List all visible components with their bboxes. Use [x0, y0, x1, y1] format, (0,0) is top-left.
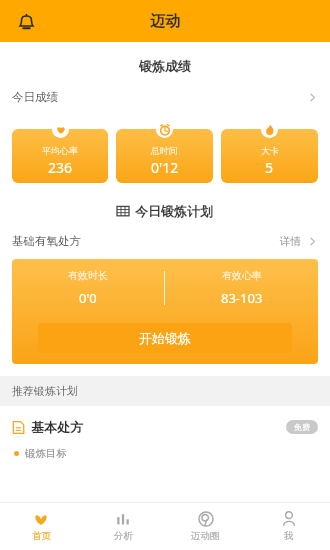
button[interactable]: 基本处方: [0, 416, 330, 438]
button[interactable]: 今日成绩: [0, 87, 330, 107]
staticText: 免费: [294, 422, 310, 432]
staticText: 分析: [114, 530, 133, 542]
staticText: 我: [284, 530, 294, 542]
button[interactable]: 开始锻炼: [38, 323, 292, 353]
staticText: 有效时长: [68, 269, 108, 282]
staticText: 迈动圈: [191, 530, 220, 542]
staticText: 大卡: [261, 145, 279, 156]
staticText: 5: [265, 158, 274, 177]
button[interactable]: Notifications: [10, 5, 42, 37]
staticText: 总时间: [151, 145, 178, 156]
staticText: 今日成绩: [12, 90, 58, 104]
staticText: 锻炼目标: [25, 447, 67, 460]
staticText: 锻炼成绩: [0, 58, 330, 74]
staticText: 首页: [32, 530, 51, 542]
staticText: 236: [48, 158, 73, 177]
button[interactable]: 首页: [0, 502, 82, 550]
staticText: 0'0: [79, 289, 97, 307]
button[interactable]: 我: [247, 502, 330, 550]
staticText: 推荐锻炼计划: [12, 384, 78, 398]
staticText: 开始锻炼: [139, 330, 191, 346]
button[interactable]: 基础有氧处方: [0, 231, 330, 251]
button[interactable]: 总时间: [116, 121, 213, 183]
staticText: 83-103: [221, 289, 263, 307]
staticText: 有效心率: [222, 269, 262, 282]
button[interactable]: 分析: [82, 502, 164, 550]
button[interactable]: 平均心率: [12, 121, 108, 183]
staticText: 迈动: [150, 12, 180, 31]
staticText: 详情: [280, 235, 301, 248]
button[interactable]: 大卡: [221, 121, 318, 183]
staticText: 平均心率: [42, 145, 78, 156]
staticText: 基本处方: [31, 419, 83, 435]
staticText: 0'12: [151, 158, 179, 177]
staticText: 基础有氧处方: [12, 234, 81, 248]
staticText: 今日锻炼计划: [135, 203, 213, 219]
button[interactable]: 迈动圈: [164, 502, 247, 550]
